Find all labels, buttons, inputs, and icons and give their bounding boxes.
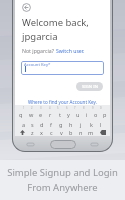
staticText: 1 [23, 106, 25, 109]
staticText: 8 [83, 106, 85, 109]
staticText: q [19, 111, 23, 118]
button[interactable]: h [66, 119, 76, 129]
button[interactable]: SIGN IN [76, 82, 103, 91]
staticText: Welcome back, [22, 16, 89, 29]
button[interactable]: t [55, 109, 64, 119]
button[interactable]: w [26, 109, 36, 119]
staticText: SIGN IN [82, 84, 98, 90]
staticText: c [50, 129, 53, 135]
staticText: o [94, 111, 98, 118]
staticText: w [29, 111, 34, 118]
staticText: Account Key* [24, 62, 51, 68]
staticText: Switch user. [56, 47, 85, 54]
button[interactable]: v [56, 129, 66, 135]
staticText: j [80, 121, 82, 128]
staticText: 4 [49, 106, 51, 109]
button[interactable]: d [37, 119, 46, 129]
button[interactable]: n [76, 129, 86, 135]
button[interactable]: c [46, 129, 56, 135]
staticText: z [31, 129, 34, 135]
button[interactable]: j [76, 119, 86, 129]
staticText: a [22, 121, 26, 128]
staticText: v [60, 129, 63, 135]
button[interactable]: p [100, 109, 109, 119]
button[interactable]: r [46, 109, 55, 119]
staticText: l [100, 121, 102, 128]
button[interactable]: Backspace [96, 129, 109, 135]
button[interactable]: l [96, 119, 106, 129]
button[interactable]: o [91, 109, 100, 119]
staticText: b [69, 129, 73, 135]
staticText: m [88, 129, 94, 135]
button[interactable]: b [66, 129, 76, 135]
button[interactable]: Switch user. [56, 47, 85, 54]
staticText: From Anywhere [27, 181, 98, 194]
staticText: s [31, 121, 34, 128]
staticText: y [67, 111, 70, 118]
button[interactable]: m [86, 129, 96, 135]
staticText: d [40, 121, 44, 128]
button[interactable]: Where to find your Account Key. [28, 99, 97, 105]
staticText: 7 [74, 106, 76, 109]
button[interactable]: u [73, 109, 82, 119]
button[interactable]: z [28, 129, 37, 135]
staticText: 5 [57, 106, 59, 109]
staticText: p [103, 111, 107, 118]
staticText: h [69, 121, 73, 128]
staticText: Where to find your Account Key. [28, 99, 97, 105]
staticText: n [79, 129, 83, 135]
staticText: i [86, 111, 88, 118]
staticText: r [49, 111, 52, 118]
button[interactable]: k [86, 119, 96, 129]
staticText: e [39, 111, 43, 118]
button[interactable]: Recents [26, 141, 35, 148]
button[interactable]: f [46, 119, 56, 129]
button[interactable]: Back [22, 3, 31, 12]
staticText: u [76, 111, 80, 118]
button[interactable]: Home [50, 140, 76, 149]
button[interactable]: q [16, 109, 26, 119]
staticText: 6 [66, 106, 68, 109]
staticText: t [59, 111, 61, 118]
button[interactable]: i [82, 109, 91, 119]
button[interactable]: s [28, 119, 37, 129]
staticText: f [50, 121, 52, 128]
button[interactable]: Shift [16, 129, 28, 135]
button[interactable]: Back [90, 141, 99, 148]
staticText: 2 [31, 106, 33, 109]
button[interactable]: x [37, 129, 46, 135]
staticText: 9 [92, 106, 94, 109]
staticText: x [40, 129, 43, 135]
button[interactable]: y [64, 109, 73, 119]
staticText: 0 [100, 106, 102, 109]
staticText: jpgarcia [22, 30, 58, 43]
button[interactable]: Account Key* [21, 61, 104, 75]
button[interactable]: a [19, 119, 28, 129]
staticText: Not jpgarcia? [22, 47, 56, 54]
button[interactable]: e [36, 109, 46, 119]
staticText: k [90, 121, 93, 128]
staticText: g [59, 121, 63, 128]
button[interactable]: g [56, 119, 66, 129]
staticText: Simple Signup and Login [7, 166, 118, 179]
